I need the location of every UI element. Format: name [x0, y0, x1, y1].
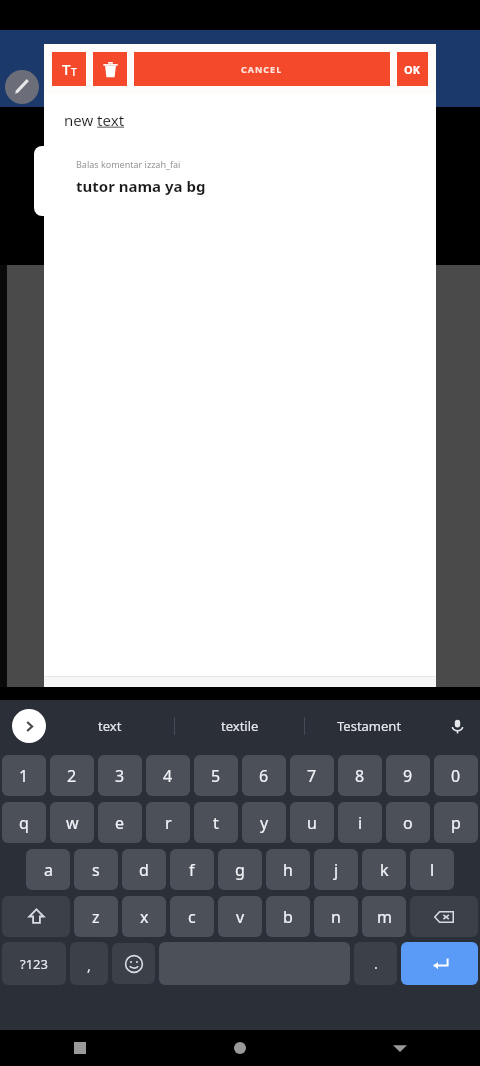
- staticText: textile: [221, 717, 259, 735]
- staticText: c: [188, 906, 196, 928]
- button[interactable]: 0: [434, 755, 478, 796]
- staticText: o: [403, 812, 413, 834]
- staticText: d: [139, 859, 149, 881]
- staticText: u: [307, 812, 317, 834]
- button[interactable]: b: [266, 896, 310, 937]
- button[interactable]: u: [290, 802, 334, 843]
- staticText: y: [260, 812, 269, 834]
- button[interactable]: Edit: [5, 70, 39, 104]
- button[interactable]: Emoji: [112, 943, 155, 984]
- button[interactable]: Home: [160, 1030, 320, 1066]
- button[interactable]: Shift: [2, 896, 70, 937]
- button[interactable]: .: [354, 942, 397, 985]
- button[interactable]: ,: [70, 942, 108, 985]
- staticText: a: [44, 859, 53, 881]
- staticText: m: [377, 906, 392, 928]
- staticText: h: [283, 859, 293, 881]
- staticText: v: [236, 906, 245, 928]
- button[interactable]: 8: [338, 755, 382, 796]
- staticText: ,: [87, 956, 91, 975]
- staticText: Testament: [337, 717, 402, 735]
- staticText: 7: [307, 765, 317, 787]
- staticText: f: [189, 859, 195, 881]
- button[interactable]: Enter: [401, 942, 478, 985]
- button[interactable]: Text size: [52, 52, 86, 86]
- staticText: T: [62, 59, 71, 79]
- button[interactable]: v: [218, 896, 262, 937]
- button[interactable]: l: [410, 849, 454, 890]
- staticText: 6: [259, 765, 269, 787]
- button[interactable]: z: [74, 896, 118, 937]
- button[interactable]: CANCEL: [134, 52, 390, 86]
- button[interactable]: q: [2, 802, 46, 843]
- button[interactable]: t: [194, 802, 238, 843]
- button[interactable]: s: [74, 849, 118, 890]
- button[interactable]: OK: [397, 52, 428, 86]
- button[interactable]: r: [146, 802, 190, 843]
- button[interactable]: text: [46, 700, 174, 752]
- button[interactable]: n: [314, 896, 358, 937]
- button[interactable]: Recents: [0, 1030, 160, 1066]
- button[interactable]: e: [98, 802, 142, 843]
- button[interactable]: Delete: [93, 52, 127, 86]
- button[interactable]: More suggestions: [12, 709, 46, 743]
- button[interactable]: textile: [175, 700, 304, 752]
- staticText: q: [19, 812, 29, 834]
- button[interactable]: g: [218, 849, 262, 890]
- staticText: i: [358, 812, 363, 834]
- button[interactable]: 2: [50, 755, 94, 796]
- staticText: j: [334, 859, 339, 881]
- staticText: s: [92, 859, 100, 881]
- staticText: g: [235, 859, 245, 881]
- staticText: 4: [163, 765, 173, 787]
- button[interactable]: c: [170, 896, 214, 937]
- button[interactable]: j: [314, 849, 358, 890]
- button[interactable]: m: [362, 896, 406, 937]
- staticText: ?123: [20, 955, 48, 973]
- staticText: z: [92, 906, 100, 928]
- staticText: 3: [115, 765, 125, 787]
- staticText: T: [71, 65, 77, 79]
- button[interactable]: d: [122, 849, 166, 890]
- button[interactable]: y: [242, 802, 286, 843]
- staticText: n: [331, 906, 341, 928]
- button[interactable]: 5: [194, 755, 238, 796]
- staticText: w: [66, 812, 79, 834]
- staticText: e: [115, 812, 125, 834]
- button[interactable]: w: [50, 802, 94, 843]
- staticText: tutor nama ya bg: [76, 176, 206, 196]
- button[interactable]: o: [386, 802, 430, 843]
- button[interactable]: 6: [242, 755, 286, 796]
- button[interactable]: 3: [98, 755, 142, 796]
- button[interactable]: 1: [2, 755, 46, 796]
- button[interactable]: 7: [290, 755, 334, 796]
- staticText: CANCEL: [241, 63, 283, 75]
- button[interactable]: ?123: [2, 942, 66, 985]
- button[interactable]: Testament: [305, 700, 434, 752]
- staticText: l: [430, 859, 435, 881]
- staticText: 8: [355, 765, 365, 787]
- staticText: 0: [451, 765, 461, 787]
- staticText: t: [213, 812, 219, 834]
- button[interactable]: i: [338, 802, 382, 843]
- button[interactable]: a: [26, 849, 70, 890]
- staticText: new text: [64, 110, 125, 130]
- staticText: k: [380, 859, 389, 881]
- staticText: OK: [404, 62, 421, 77]
- button[interactable]: h: [266, 849, 310, 890]
- staticText: text: [98, 717, 122, 735]
- button[interactable]: f: [170, 849, 214, 890]
- button[interactable]: 9: [386, 755, 430, 796]
- button[interactable]: Close keyboard: [320, 1030, 480, 1066]
- staticText: 2: [67, 765, 77, 787]
- staticText: .: [374, 954, 378, 973]
- button[interactable]: x: [122, 896, 166, 937]
- button[interactable]: k: [362, 849, 406, 890]
- button[interactable]: p: [434, 802, 478, 843]
- staticText: p: [451, 812, 461, 834]
- button[interactable]: Backspace: [410, 896, 478, 937]
- button[interactable]: 4: [146, 755, 190, 796]
- button[interactable]: Voice input: [434, 700, 480, 752]
- staticText: 1: [19, 765, 29, 787]
